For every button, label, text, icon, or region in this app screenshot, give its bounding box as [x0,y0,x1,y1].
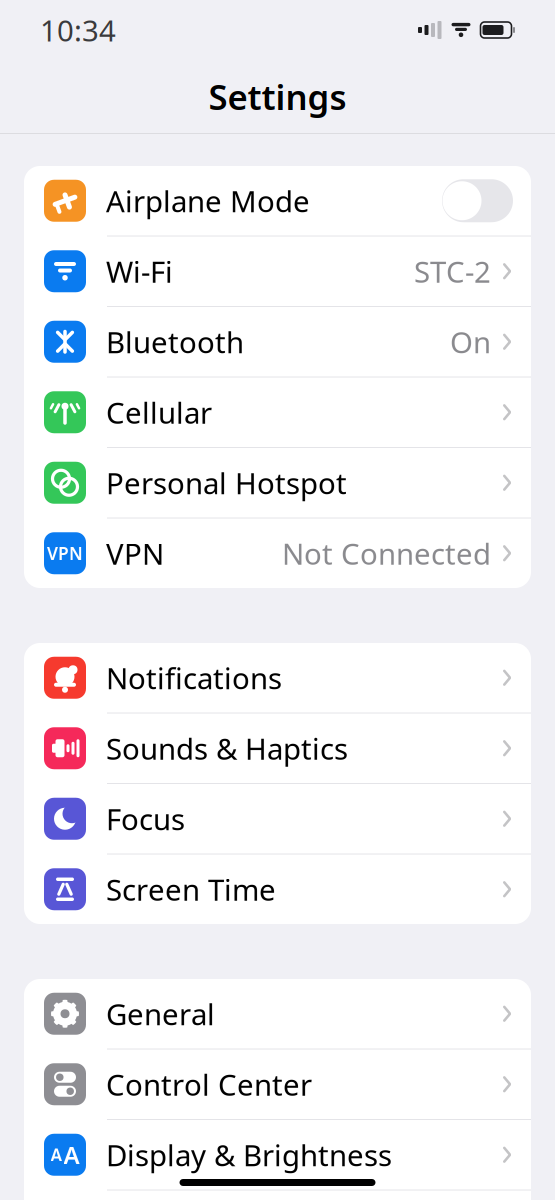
button[interactable]: Control Center [24,1049,531,1120]
staticText: Cellular [106,393,212,432]
staticText: Sounds & Haptics [106,729,348,768]
staticText: Screen Time [106,870,276,909]
button[interactable]: Airplane Mode [24,166,531,236]
staticText: Display & Brightness [106,1135,392,1174]
staticText: Notifications [106,658,282,697]
button[interactable]: General [24,979,531,1049]
staticText: 10:34 [40,10,116,49]
button[interactable]: Screen Time [24,854,531,924]
button[interactable]: Wi-Fi [24,236,531,307]
staticText: VPN [47,542,83,565]
button[interactable]: Focus [24,784,531,854]
staticText: VPN [106,534,164,573]
staticText: STC-2 [414,252,491,291]
staticText: Wi-Fi [106,252,173,291]
staticText: A [50,1143,62,1166]
staticText: On [450,322,491,361]
staticText: Settings [208,73,346,119]
button[interactable]: Bluetooth [24,307,531,377]
button[interactable]: Personal Hotspot [24,448,531,518]
button[interactable]: Notifications [24,643,531,713]
staticText: Personal Hotspot [106,463,347,502]
staticText: A [63,1139,79,1171]
staticText: Bluetooth [106,322,244,361]
button[interactable]: Home Screen [24,1190,531,1200]
button[interactable]: VPN [24,518,531,588]
staticText: Not Connected [282,534,491,573]
staticText: Control Center [106,1065,312,1104]
button[interactable]: A [24,1120,531,1190]
staticText: General [106,994,215,1033]
button[interactable]: Cellular [24,377,531,448]
button[interactable]: Sounds & Haptics [24,713,531,784]
staticText: Airplane Mode [106,181,310,220]
staticText: Focus [106,799,185,838]
